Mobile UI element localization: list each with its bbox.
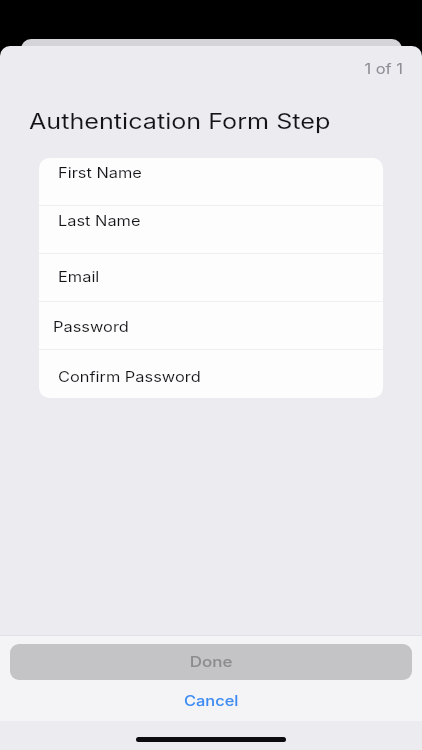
button[interactable]: Last Name (39, 206, 383, 254)
staticText: Cancel (184, 692, 239, 709)
button[interactable]: Email (39, 254, 383, 302)
button[interactable]: Confirm Password (39, 350, 383, 398)
staticText: 1 of 1 (364, 60, 403, 77)
staticText: Password (53, 318, 129, 335)
staticText: Confirm Password (58, 368, 201, 385)
staticText: Authentication Form Step (29, 108, 331, 134)
staticText: Last Name (58, 212, 141, 229)
button[interactable]: Done (10, 644, 412, 680)
button[interactable]: Password (39, 302, 383, 350)
staticText: Done (190, 653, 233, 671)
staticText: First Name (58, 164, 142, 181)
button[interactable]: First Name (39, 158, 383, 206)
button[interactable]: Cancel (0, 680, 422, 718)
staticText: Email (58, 268, 100, 285)
